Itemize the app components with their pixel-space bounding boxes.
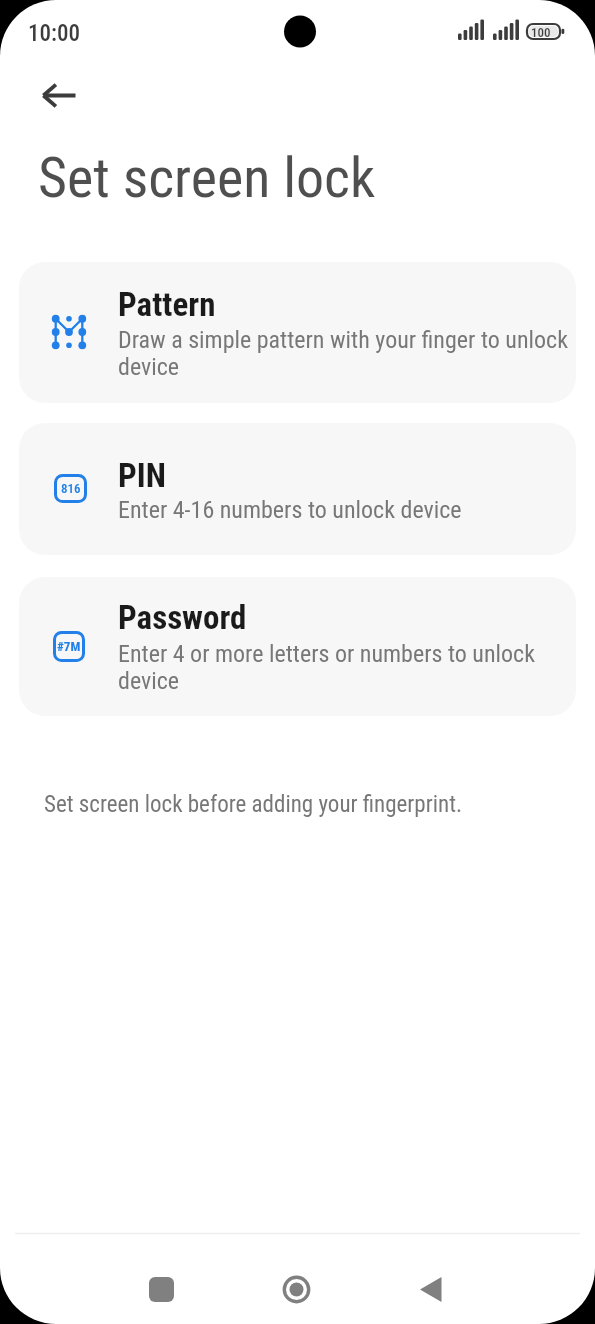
button[interactable]: Pattern [19, 262, 576, 403]
staticText: #7M [57, 639, 81, 654]
staticText: Set screen lock before adding your finge… [44, 791, 462, 818]
staticText: 100 [531, 25, 551, 40]
staticText: PIN [118, 456, 166, 495]
staticText: Set screen lock [38, 145, 376, 211]
button[interactable]: #7M [19, 577, 576, 716]
button[interactable] [30, 72, 90, 118]
button[interactable] [134, 1262, 189, 1317]
button[interactable]: 816 [19, 423, 576, 555]
staticText: Draw a simple pattern with your finger t… [118, 326, 568, 386]
staticText: Enter 4-16 numbers to unlock device [118, 496, 462, 524]
staticText: Enter 4 or more letters or numbers to un… [118, 640, 558, 700]
staticText: Pattern [118, 285, 216, 324]
staticText: 10:00 [28, 20, 81, 47]
staticText: Password [118, 598, 247, 637]
button[interactable] [403, 1262, 458, 1317]
staticText: 816 [61, 481, 81, 496]
button[interactable] [269, 1262, 324, 1317]
